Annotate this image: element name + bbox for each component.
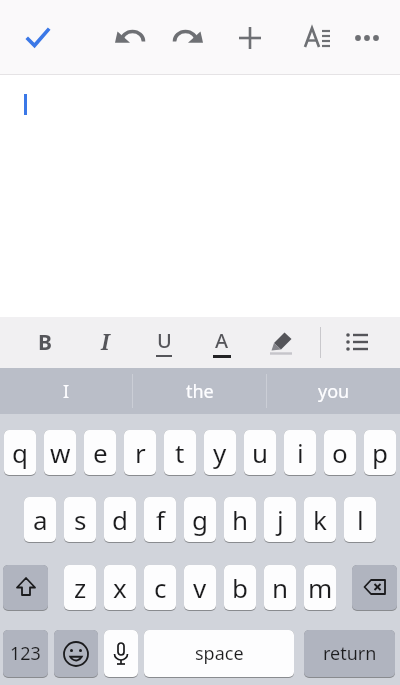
button[interactable]: you <box>267 368 400 414</box>
staticText: g <box>192 502 208 537</box>
button[interactable]: r <box>124 430 156 476</box>
button[interactable] <box>299 20 335 56</box>
button[interactable]: l <box>344 497 376 543</box>
staticText: z <box>74 570 87 605</box>
staticText: o <box>332 435 348 470</box>
button[interactable]: I <box>0 368 132 414</box>
staticText: B <box>38 328 52 357</box>
staticText: the <box>186 379 214 404</box>
staticText: e <box>93 435 108 470</box>
staticText: v <box>193 570 207 605</box>
button[interactable]: n <box>264 565 296 611</box>
button[interactable]: w <box>44 430 76 476</box>
staticText: a <box>33 502 48 537</box>
staticText: A <box>215 327 229 354</box>
staticText: p <box>372 435 388 470</box>
button[interactable] <box>3 565 48 611</box>
staticText: i <box>297 435 304 470</box>
staticText: k <box>313 502 327 537</box>
staticText: f <box>156 502 165 537</box>
staticText: space <box>195 641 244 666</box>
button[interactable]: d <box>104 497 136 543</box>
button[interactable] <box>104 630 138 678</box>
staticText: r <box>135 435 146 470</box>
button[interactable]: x <box>104 565 136 611</box>
button[interactable]: u <box>244 430 276 476</box>
button[interactable]: B <box>27 324 63 360</box>
button[interactable]: the <box>133 368 266 414</box>
button[interactable]: e <box>84 430 116 476</box>
staticText: q <box>12 435 28 470</box>
button[interactable] <box>171 20 207 56</box>
button[interactable] <box>339 324 375 360</box>
button[interactable]: k <box>304 497 336 543</box>
button[interactable]: j <box>264 497 296 543</box>
staticText: t <box>175 435 185 470</box>
staticText: m <box>308 570 333 605</box>
staticText: s <box>74 502 87 537</box>
button[interactable]: U <box>146 324 182 360</box>
button[interactable] <box>352 565 397 611</box>
button[interactable]: p <box>364 430 396 476</box>
button[interactable]: o <box>324 430 356 476</box>
staticText: y <box>213 435 227 470</box>
button[interactable]: space <box>144 630 294 678</box>
button[interactable]: t <box>164 430 196 476</box>
staticText: U <box>157 327 172 354</box>
staticText: c <box>154 570 167 605</box>
button[interactable]: return <box>304 630 395 678</box>
button[interactable]: m <box>304 565 336 611</box>
staticText: d <box>112 502 128 537</box>
button[interactable] <box>263 324 299 360</box>
staticText: l <box>357 502 364 537</box>
button[interactable]: v <box>184 565 216 611</box>
button[interactable]: i <box>284 430 316 476</box>
button[interactable]: y <box>204 430 236 476</box>
button[interactable] <box>349 20 385 56</box>
button[interactable]: h <box>224 497 256 543</box>
button[interactable]: g <box>184 497 216 543</box>
staticText: u <box>252 435 269 470</box>
button[interactable]: f <box>144 497 176 543</box>
staticText: h <box>232 502 249 537</box>
button[interactable]: c <box>144 565 176 611</box>
staticText: w <box>50 435 71 470</box>
button[interactable]: A <box>204 324 240 360</box>
button[interactable]: b <box>224 565 256 611</box>
button[interactable]: z <box>64 565 96 611</box>
staticText: 123 <box>10 641 41 666</box>
button[interactable] <box>20 20 56 56</box>
staticText: I <box>63 379 70 404</box>
button[interactable]: q <box>4 430 36 476</box>
staticText: I <box>101 328 110 357</box>
button[interactable]: I <box>87 324 123 360</box>
staticText: x <box>113 570 127 605</box>
button[interactable] <box>54 630 98 678</box>
button[interactable] <box>111 20 147 56</box>
staticText: n <box>272 570 289 605</box>
button[interactable]: s <box>64 497 96 543</box>
staticText: j <box>277 502 284 537</box>
staticText: you <box>318 379 350 404</box>
button[interactable]: a <box>24 497 56 543</box>
staticText: return <box>323 641 377 666</box>
staticText: b <box>232 570 248 605</box>
button[interactable]: 123 <box>3 630 48 678</box>
button[interactable] <box>232 20 268 56</box>
